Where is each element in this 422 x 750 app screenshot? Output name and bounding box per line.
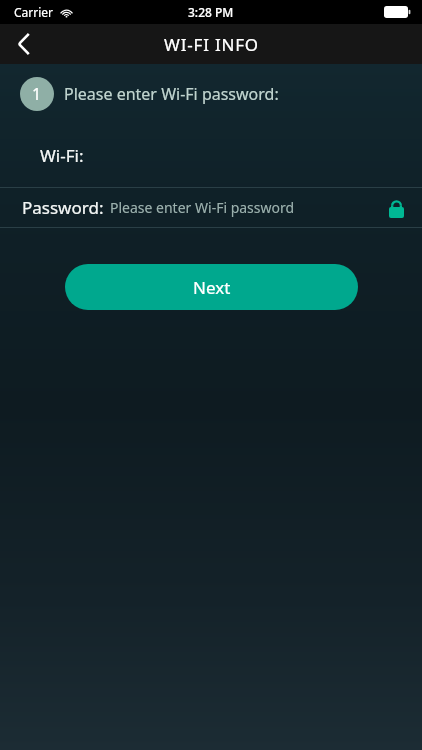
staticText: Next <box>193 276 231 299</box>
staticText: Please enter Wi-Fi password <box>110 198 382 217</box>
staticText: 1 <box>32 83 42 105</box>
button[interactable]: Back <box>0 24 48 64</box>
staticText: Carrier <box>14 4 54 20</box>
staticText: Please enter Wi-Fi password: <box>64 83 279 105</box>
button[interactable]: Wi-Fi: <box>0 124 422 187</box>
staticText: 3:28 PM <box>188 4 234 20</box>
button[interactable]: Password is secured <box>382 194 410 222</box>
staticText: WI-FI INFO <box>164 33 259 56</box>
staticText: Password: <box>22 196 104 219</box>
staticText: Wi-Fi: <box>40 144 84 167</box>
button[interactable]: Next <box>65 264 358 310</box>
button[interactable]: Password: <box>0 188 422 227</box>
